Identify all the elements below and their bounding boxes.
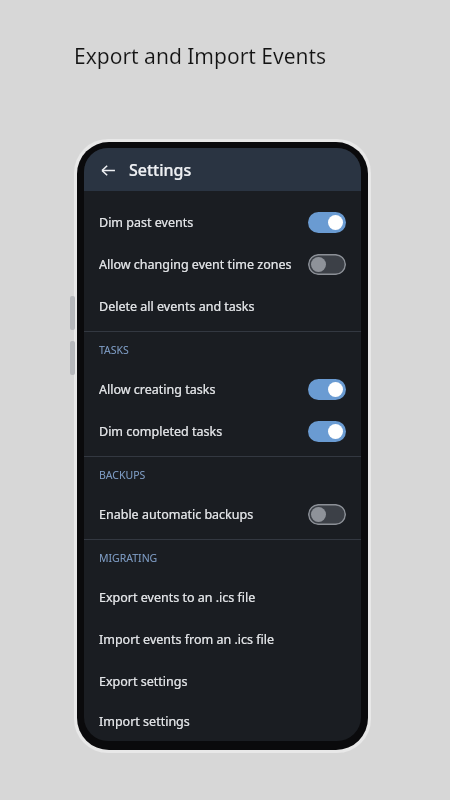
button[interactable]: Enable automatic backups <box>84 493 361 535</box>
button[interactable]: Allow creating tasks <box>84 368 361 410</box>
button[interactable]: Export settings <box>84 660 361 702</box>
staticText: Export and Import Events <box>74 42 327 71</box>
button[interactable]: Export events to an .ics file <box>84 576 361 618</box>
staticText: Delete all events and tasks <box>99 298 255 315</box>
staticText: BACKUPS <box>99 468 146 482</box>
staticText: Allow creating tasks <box>99 381 216 398</box>
button[interactable]: Dim completed tasks <box>84 410 361 452</box>
button[interactable]: Toggle off <box>308 254 346 275</box>
staticText: Import events from an .ics file <box>99 631 275 648</box>
button[interactable]: Back <box>93 155 123 185</box>
button[interactable]: Toggle off <box>308 504 346 525</box>
staticText: Export events to an .ics file <box>99 589 256 606</box>
button[interactable]: Dim past events <box>84 201 361 243</box>
staticText: Import settings <box>99 713 190 730</box>
button[interactable]: Toggle on <box>308 212 346 233</box>
button[interactable]: Delete all events and tasks <box>84 285 361 327</box>
button[interactable]: Allow changing event time zones <box>84 243 361 285</box>
staticText: Export settings <box>99 673 188 690</box>
staticText: TASKS <box>99 343 129 357</box>
staticText: MIGRATING <box>99 551 158 565</box>
button[interactable]: Import settings <box>84 702 361 741</box>
staticText: Dim past events <box>99 214 194 231</box>
staticText: Dim completed tasks <box>99 423 223 440</box>
staticText: Allow changing event time zones <box>99 256 292 273</box>
button[interactable]: Toggle on <box>308 421 346 442</box>
staticText: Settings <box>129 159 192 181</box>
button[interactable]: Toggle on <box>308 379 346 400</box>
staticText: Enable automatic backups <box>99 506 254 523</box>
button[interactable]: Import events from an .ics file <box>84 618 361 660</box>
